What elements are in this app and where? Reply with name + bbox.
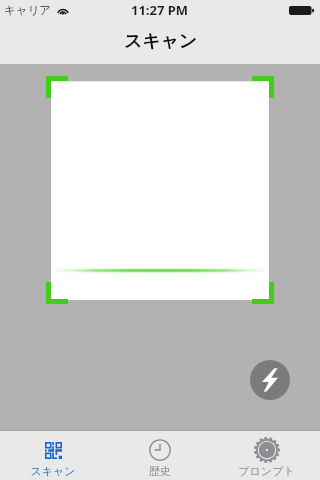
button[interactable]: 歴史 — [106, 431, 213, 480]
staticText: スキャン — [124, 30, 197, 52]
staticText: プロンプト — [238, 464, 295, 478]
staticText: 歴史 — [149, 464, 171, 478]
button[interactable]: プロンプト — [213, 431, 320, 480]
staticText: スキャン — [30, 464, 76, 478]
button[interactable]: スキャン — [0, 431, 106, 480]
button[interactable]: Toggle flashlight — [250, 360, 290, 400]
staticText: キャリア — [4, 3, 52, 17]
staticText: 11:27 PM — [131, 1, 189, 19]
